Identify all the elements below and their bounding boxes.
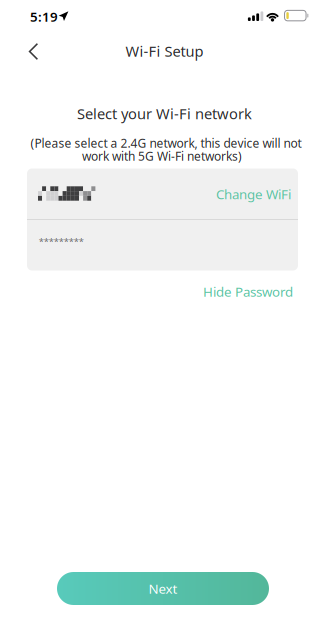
staticText: Change WiFi: [216, 185, 291, 203]
button[interactable]: Back: [13, 34, 53, 68]
staticText: work with 5G Wi-Fi networks): [82, 148, 242, 164]
button[interactable]: Next: [57, 572, 269, 605]
button[interactable]: Change WiFi: [216, 180, 291, 208]
button[interactable]: Hide Password: [203, 278, 293, 304]
staticText: *********: [39, 235, 84, 248]
staticText: (Please select a 2.4G network, this devi…: [30, 135, 301, 151]
staticText: 5:19: [30, 8, 58, 25]
staticText: Wi-Fi Setup: [125, 41, 203, 61]
staticText: Select your Wi-Fi network: [77, 104, 252, 123]
staticText: Hide Password: [203, 283, 293, 300]
staticText: Next: [148, 580, 177, 597]
